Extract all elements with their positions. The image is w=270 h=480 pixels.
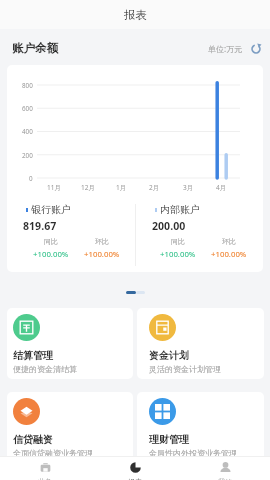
staticText: +100.00% — [33, 249, 69, 260]
button[interactable]: 信贷融资 — [7, 392, 133, 463]
button[interactable]: 结算管理 — [7, 308, 133, 379]
staticText: 我的 — [218, 477, 232, 480]
staticText: 1月 — [116, 183, 127, 192]
staticText: 同比 — [171, 237, 185, 246]
button[interactable]: 资金计划 — [137, 308, 264, 379]
button[interactable]: 我的 — [180, 456, 270, 480]
staticText: 12月 — [81, 183, 95, 192]
button[interactable]: 理财管理 — [137, 392, 264, 463]
staticText: 4月 — [216, 183, 227, 192]
staticText: 11月 — [47, 183, 61, 192]
staticText: 200.00 — [152, 219, 186, 233]
staticText: 环比 — [95, 237, 109, 246]
staticText: 账户余额 — [12, 41, 58, 55]
staticText: +100.00% — [160, 249, 196, 260]
staticText: 金局性内外投资业务管理 — [149, 448, 237, 458]
staticText: 结算管理 — [13, 349, 53, 362]
staticText: 全面信贷融资业务管理 — [13, 448, 93, 458]
button[interactable]: 业务 — [0, 456, 90, 480]
staticText: 单位:万元 — [208, 43, 243, 54]
staticText: 业务 — [38, 477, 52, 480]
staticText: 报表 — [124, 8, 147, 22]
staticText: +100.00% — [211, 249, 247, 260]
button[interactable]: 报表 — [90, 456, 180, 480]
staticText: +100.00% — [84, 249, 120, 260]
staticText: 800 — [22, 81, 33, 90]
staticText: 资金计划 — [149, 349, 189, 362]
staticText: 便捷的资金清结算 — [13, 364, 77, 374]
button[interactable]: Refresh — [249, 42, 262, 55]
staticText: 400 — [22, 127, 33, 136]
staticText: 3月 — [183, 183, 194, 192]
staticText: 信贷融资 — [13, 433, 53, 446]
staticText: 200 — [22, 151, 33, 160]
staticText: 2月 — [149, 183, 160, 192]
staticText: 报表 — [128, 477, 142, 480]
staticText: 环比 — [222, 237, 236, 246]
staticText: 内部账户 — [160, 203, 200, 216]
staticText: 银行账户 — [31, 203, 71, 216]
staticText: 0 — [29, 174, 33, 183]
staticText: 600 — [22, 104, 33, 113]
staticText: 理财管理 — [149, 433, 189, 446]
staticText: 同比 — [44, 237, 58, 246]
staticText: 819.67 — [23, 219, 57, 233]
staticText: 灵活的资金计划管理 — [149, 364, 221, 374]
